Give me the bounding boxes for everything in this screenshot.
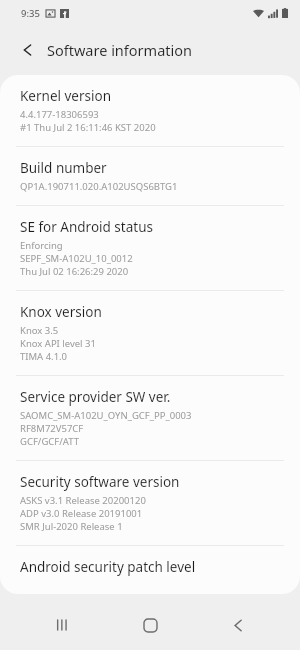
staticText: Enforcing (20, 239, 63, 252)
staticText: SAOMC_SM-A102U_OYN_GCF_PP_0003 (20, 409, 192, 422)
staticText: #1 Thu Jul 2 16:11:46 KST 2020 (20, 121, 156, 134)
staticText: Build number (20, 159, 107, 177)
button[interactable]: Back (212, 600, 264, 650)
staticText: 4.4.177-18306593 (20, 108, 99, 121)
staticText: Knox 3.5 (20, 324, 59, 337)
staticText: RF8M72V57CF (20, 422, 84, 435)
button[interactable]: Back (12, 34, 44, 66)
staticText: Knox API level 31 (20, 337, 96, 350)
staticText: Knox version (20, 303, 102, 321)
button[interactable]: Recent apps (36, 600, 88, 650)
button[interactable]: SE for Android status (0, 206, 300, 290)
button[interactable]: Build number (0, 147, 300, 205)
staticText: SEPF_SM-A102U_10_0012 (20, 252, 133, 265)
button[interactable]: Security software version (0, 461, 300, 545)
staticText: GCF/GCF/ATT (20, 435, 79, 448)
staticText: QP1A.190711.020.A102USQS6BTG1 (20, 180, 178, 193)
staticText: 9:35 (21, 7, 40, 20)
button[interactable]: Home (124, 600, 176, 650)
staticText: Kernel version (20, 87, 112, 105)
staticText: Service provider SW ver. (20, 388, 171, 406)
button[interactable]: Knox version (0, 291, 300, 375)
button[interactable]: Kernel version (0, 75, 300, 146)
staticText: Security software version (20, 473, 180, 491)
button[interactable]: Android security patch level (0, 546, 300, 594)
staticText: Android security patch level (20, 558, 196, 576)
staticText: Software information (47, 40, 192, 60)
staticText: Thu Jul 02 16:26:29 2020 (20, 265, 129, 278)
staticText: SE for Android status (20, 218, 153, 236)
staticText: ADP v3.0 Release 20191001 (20, 507, 143, 520)
staticText: SMR Jul-2020 Release 1 (20, 520, 123, 533)
button[interactable]: Service provider SW ver. (0, 376, 300, 460)
staticText: TIMA 4.1.0 (20, 350, 68, 363)
staticText: ASKS v3.1 Release 20200120 (20, 494, 146, 507)
